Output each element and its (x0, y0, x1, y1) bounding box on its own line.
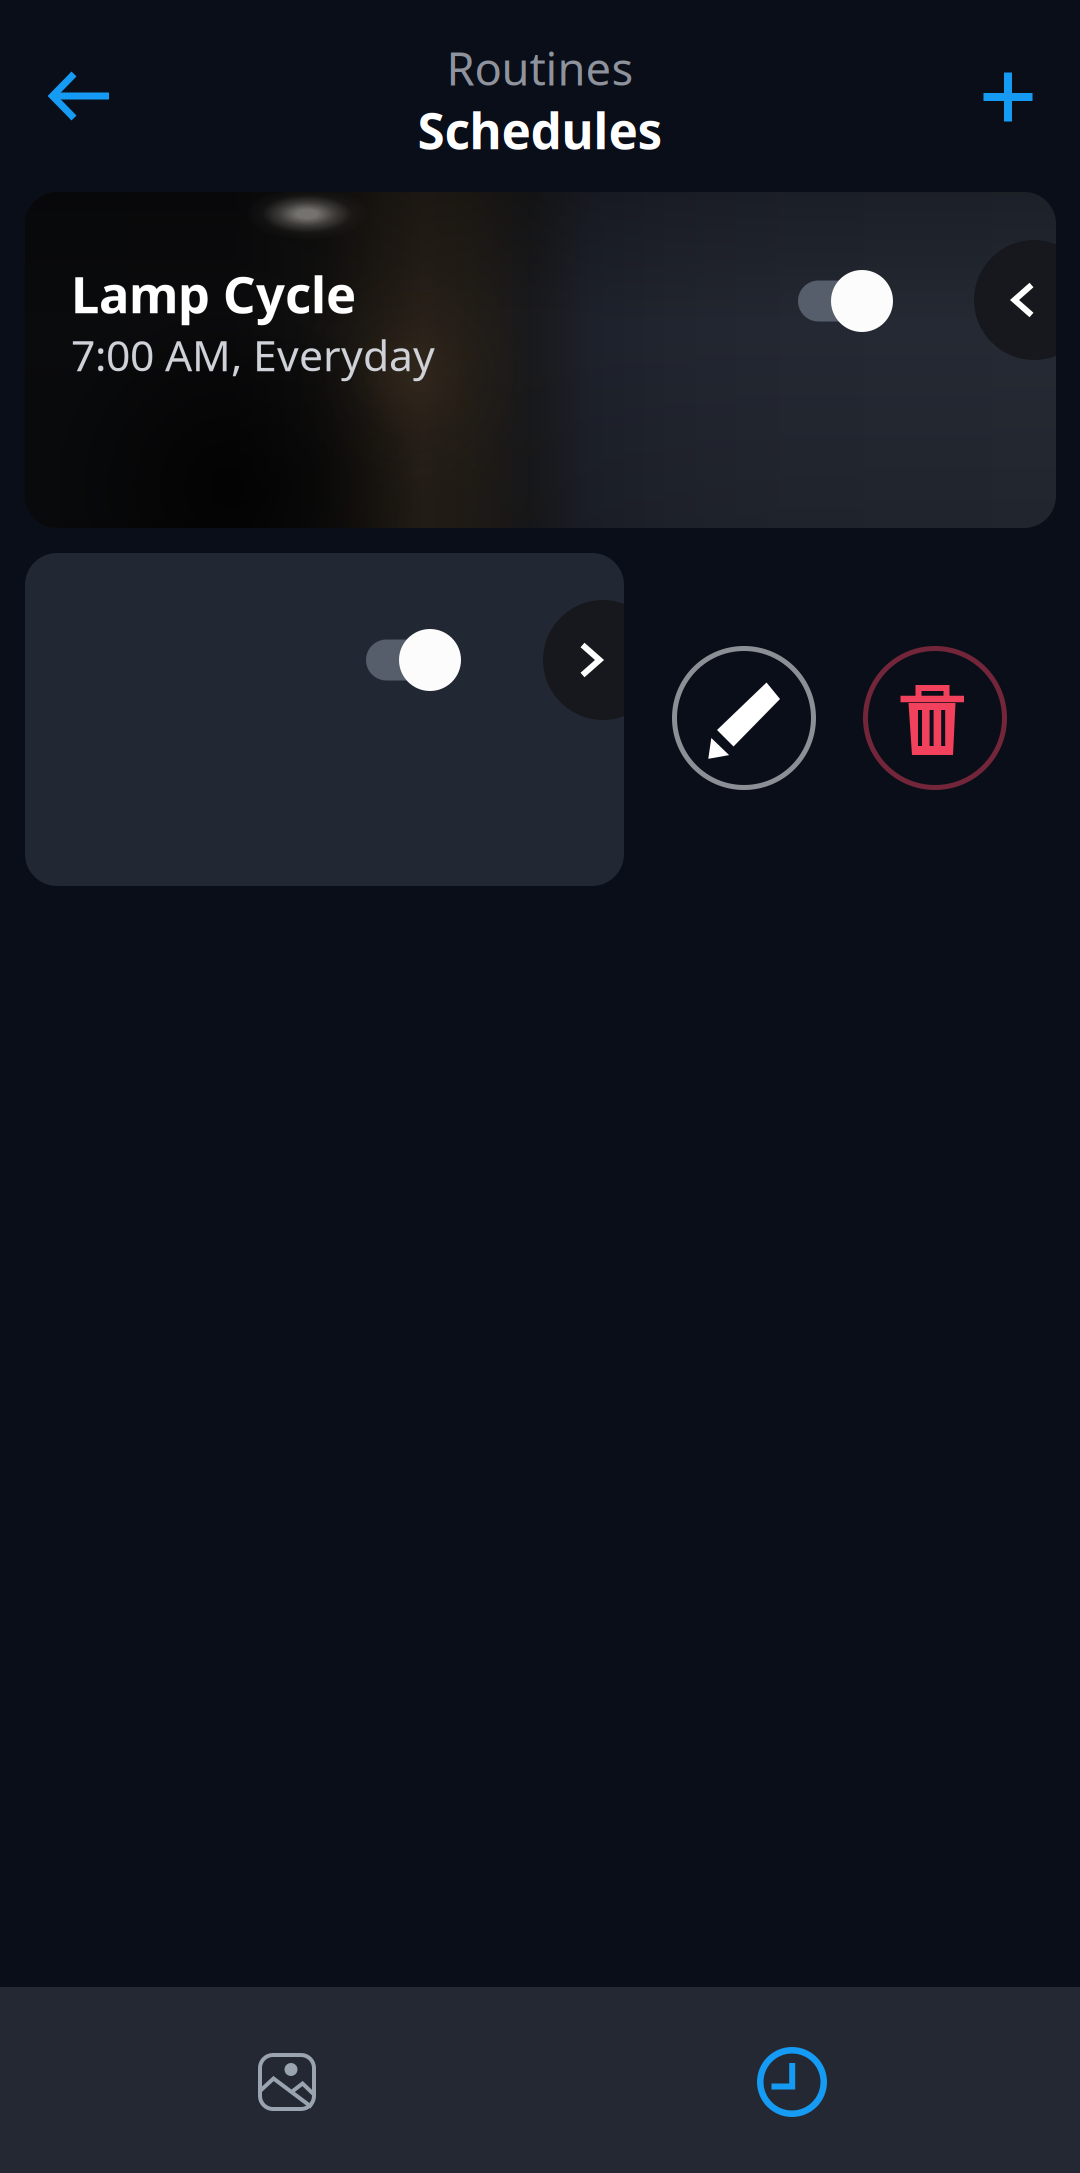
staticText: Lamp Cycle (71, 260, 356, 327)
staticText: Routines (446, 38, 633, 98)
button[interactable]: Scenes (177, 1989, 397, 2173)
staticText: 7:00 AM, Everyday (71, 326, 435, 383)
button[interactable]: Delete (862, 645, 1008, 791)
button[interactable]: Lamp Cycle (25, 192, 1056, 528)
button[interactable]: Back (19, 36, 139, 156)
button[interactable]: Schedules (682, 1989, 902, 2173)
staticText: Schedules (417, 97, 662, 163)
button[interactable]: Edit (671, 645, 817, 791)
button[interactable] (25, 553, 624, 886)
button[interactable]: Add schedule (948, 37, 1068, 157)
